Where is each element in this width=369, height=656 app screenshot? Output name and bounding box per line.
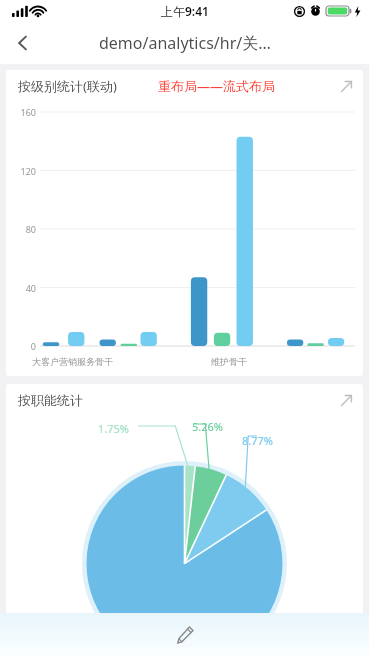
button[interactable]: Expand chart <box>329 384 363 416</box>
staticText: 按级别统计(联动) <box>18 77 117 95</box>
staticText: 160 <box>10 106 36 118</box>
staticText: demo/analytics/hr/关… <box>99 32 271 54</box>
button[interactable]: 按职能统计 <box>6 384 363 654</box>
staticText: 40 <box>10 282 36 294</box>
staticText: 80 <box>10 223 36 235</box>
staticText: 120 <box>10 165 36 177</box>
button[interactable]: Back <box>0 22 46 64</box>
staticText: 5.26% <box>192 419 223 434</box>
staticText: 按职能统计 <box>18 392 83 408</box>
staticText: 大客户营销服务骨干 <box>32 356 113 367</box>
button[interactable]: Expand chart <box>329 70 363 102</box>
staticText: 上午9:41 <box>161 3 209 19</box>
staticText: 维护骨干 <box>211 356 247 367</box>
staticText: 重布局——流式布局 <box>158 77 276 95</box>
staticText: 8.77% <box>242 433 273 448</box>
staticText: 1.75% <box>98 421 129 436</box>
button[interactable]: 按级别统计(联动) <box>6 70 363 376</box>
staticText: 0 <box>10 340 36 352</box>
button[interactable]: Edit <box>0 613 369 656</box>
